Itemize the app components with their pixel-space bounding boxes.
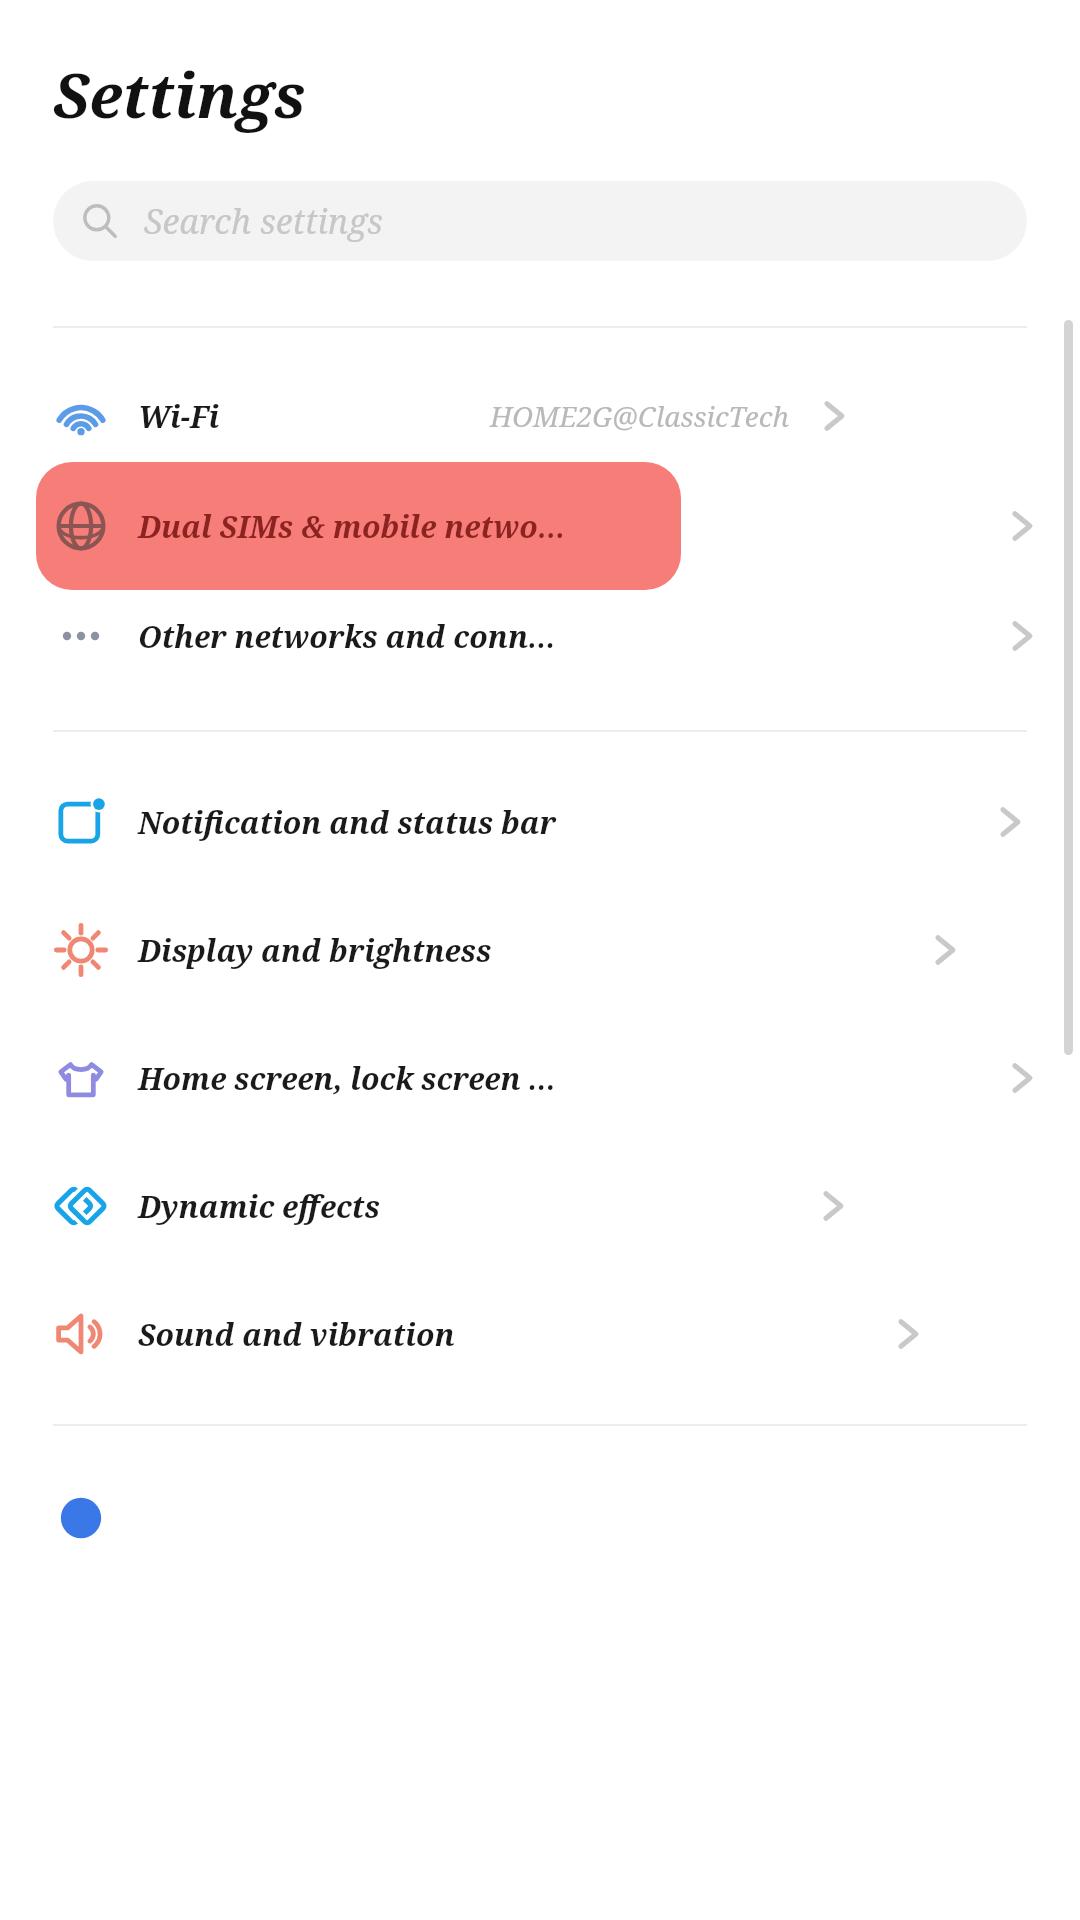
staticText: Dual SIMs & mobile network [138,506,569,547]
staticText: Display and brightness [138,930,492,971]
staticText: Notification and status bar [138,802,557,843]
button[interactable]: Other networks and connections [0,590,1080,682]
button[interactable]: Dynamic effects [0,1160,1080,1252]
button[interactable]: Notification and status bar [0,776,1080,868]
staticText: Wi-Fi [138,396,220,437]
staticText: Dynamic effects [138,1186,380,1227]
button[interactable]: Display and brightness [0,904,1080,996]
button[interactable]: Home screen, lock screen and wallpaper [0,1032,1080,1124]
button[interactable]: Dual SIMs & mobile network [0,462,1080,590]
staticText: HOME2G@ClassicTech [490,397,790,435]
button[interactable]: Sound and vibration [0,1288,1080,1380]
button[interactable]: Search settings [53,181,1027,261]
staticText: Other networks and connections [138,616,569,657]
staticText: Settings [53,52,306,136]
button[interactable] [0,1472,1080,1564]
button[interactable]: Wi-Fi [0,370,1080,462]
staticText: Home screen, lock screen and wallpaper [138,1058,569,1099]
staticText: Search settings [144,198,383,244]
staticText: Sound and vibration [138,1314,455,1355]
